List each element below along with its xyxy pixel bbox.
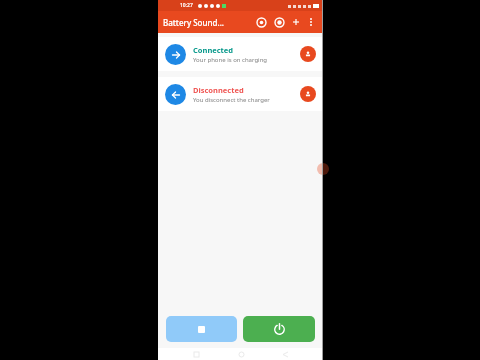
button[interactable]: Add xyxy=(288,14,304,30)
button[interactable]: Settings xyxy=(252,13,270,31)
staticText: Your phone is on charging xyxy=(193,56,268,64)
staticText: Disconnected xyxy=(193,85,244,95)
button[interactable]: Disconnected xyxy=(158,77,323,111)
staticText: Battery Sound... xyxy=(163,17,225,28)
button[interactable]: Sound settings xyxy=(270,13,288,31)
button[interactable]: Stop xyxy=(166,316,237,342)
button[interactable]: Back xyxy=(279,348,291,360)
button[interactable]: Home xyxy=(235,348,247,360)
button[interactable]: More options xyxy=(304,15,318,29)
button[interactable]: Connected xyxy=(158,37,323,71)
button[interactable]: Recents xyxy=(190,348,202,360)
button[interactable]: Sound alert xyxy=(300,86,316,102)
button[interactable]: Power on xyxy=(243,316,315,342)
staticText: You disconnect the charger xyxy=(193,96,270,104)
button[interactable]: Sound alert xyxy=(300,46,316,62)
staticText: 10:27 xyxy=(180,2,193,9)
staticText: Connected xyxy=(193,45,234,55)
